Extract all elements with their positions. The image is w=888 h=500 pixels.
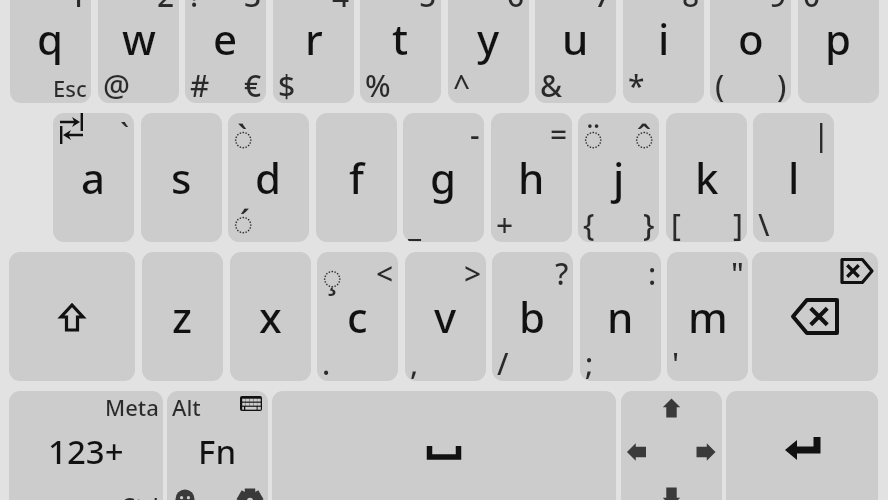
staticText: o — [738, 10, 764, 67]
staticText: Alt — [172, 392, 201, 422]
button[interactable]: u — [535, 0, 616, 103]
button[interactable]: e — [185, 0, 266, 103]
staticText: ) — [777, 65, 787, 103]
staticText: ` — [120, 114, 130, 155]
staticText: r — [305, 10, 323, 67]
staticText: j — [613, 149, 625, 206]
button[interactable]: h — [491, 113, 572, 242]
button[interactable]: l — [753, 113, 834, 242]
staticText: 3 — [244, 0, 262, 16]
staticText: * — [628, 65, 645, 103]
button[interactable]: Enter — [726, 391, 878, 500]
staticText: 7 — [594, 0, 612, 16]
staticText: | — [813, 114, 830, 155]
button[interactable]: 123+ — [9, 391, 163, 500]
staticText: Esc — [53, 73, 87, 103]
staticText: [ — [671, 204, 681, 242]
button[interactable]: j — [578, 113, 659, 242]
staticText: d — [255, 149, 282, 206]
button[interactable]: q — [10, 0, 91, 103]
staticText: 123+ — [48, 429, 124, 474]
staticText: € — [244, 65, 262, 103]
staticText: g — [430, 149, 457, 206]
button[interactable]: g — [403, 113, 484, 242]
button[interactable]: r — [273, 0, 354, 103]
staticText: ◌́ — [233, 199, 254, 242]
staticText: v — [434, 288, 457, 345]
staticText: = — [550, 114, 568, 155]
staticText: % — [365, 65, 391, 103]
staticText: 5 — [419, 0, 437, 16]
staticText: l — [788, 149, 800, 206]
staticText: ] — [733, 204, 743, 242]
button[interactable]: Shift — [9, 252, 135, 381]
staticText: - — [470, 114, 480, 155]
staticText: b — [519, 288, 546, 345]
staticText: } — [643, 204, 655, 242]
staticText: c — [347, 288, 368, 345]
button[interactable]: v — [405, 252, 486, 381]
staticText: @ — [103, 65, 130, 103]
button[interactable]: t — [360, 0, 441, 103]
staticText: ( — [715, 65, 725, 103]
staticText: 6 — [507, 0, 525, 16]
staticText: \ — [758, 204, 770, 242]
staticText: m — [688, 288, 728, 345]
staticText: " — [731, 253, 744, 294]
button[interactable]: Fn — [167, 391, 268, 500]
staticText: > — [464, 253, 482, 294]
staticText: w — [122, 10, 156, 67]
button[interactable]: p — [798, 0, 879, 103]
staticText: & — [540, 65, 563, 103]
button[interactable]: o — [710, 0, 791, 103]
button[interactable]: m — [667, 252, 748, 381]
button[interactable]: s — [141, 113, 222, 242]
staticText: i — [658, 10, 670, 67]
button[interactable]: c — [317, 252, 398, 381]
button[interactable]: d — [228, 113, 309, 242]
staticText: { — [583, 204, 595, 242]
staticText: ; — [585, 343, 594, 381]
button[interactable]: z — [142, 252, 223, 381]
staticText: ◌̂ — [634, 114, 655, 160]
staticText: q — [37, 10, 64, 67]
button[interactable]: n — [580, 252, 661, 381]
staticText: k — [695, 149, 719, 206]
staticText: ◌̧ — [322, 253, 343, 299]
staticText: a — [81, 149, 106, 206]
staticText: 2 — [157, 0, 175, 16]
staticText: 9 — [769, 0, 787, 16]
staticText: _ — [408, 204, 422, 242]
staticText: Fn — [198, 429, 237, 474]
button[interactable]: Space — [272, 391, 616, 500]
staticText: 8 — [682, 0, 700, 16]
staticText: p — [825, 10, 852, 67]
staticText: / — [497, 343, 509, 381]
staticText: + — [496, 204, 514, 242]
staticText: Meta — [105, 392, 159, 422]
staticText: h — [518, 149, 545, 206]
staticText: ◌̈ — [583, 114, 604, 160]
staticText: Ctrl — [121, 490, 159, 500]
button[interactable]: k — [666, 113, 747, 242]
button[interactable]: w — [98, 0, 179, 103]
staticText: . — [322, 343, 331, 381]
staticText: z — [172, 288, 193, 345]
button[interactable]: i — [623, 0, 704, 103]
staticText: t — [392, 10, 409, 67]
button[interactable]: a — [53, 113, 134, 242]
button[interactable]: b — [492, 252, 573, 381]
button[interactable]: Backspace — [752, 252, 878, 381]
button[interactable]: Arrow keys — [621, 391, 722, 500]
staticText: : — [648, 253, 657, 294]
staticText: ^ — [453, 65, 471, 103]
staticText: n — [607, 288, 634, 345]
staticText: ◌̀ — [233, 114, 254, 160]
button[interactable]: x — [230, 252, 311, 381]
staticText: u — [562, 10, 589, 67]
button[interactable]: f — [316, 113, 397, 242]
button[interactable]: y — [448, 0, 529, 103]
staticText: s — [171, 149, 192, 206]
staticText: x — [259, 288, 282, 345]
